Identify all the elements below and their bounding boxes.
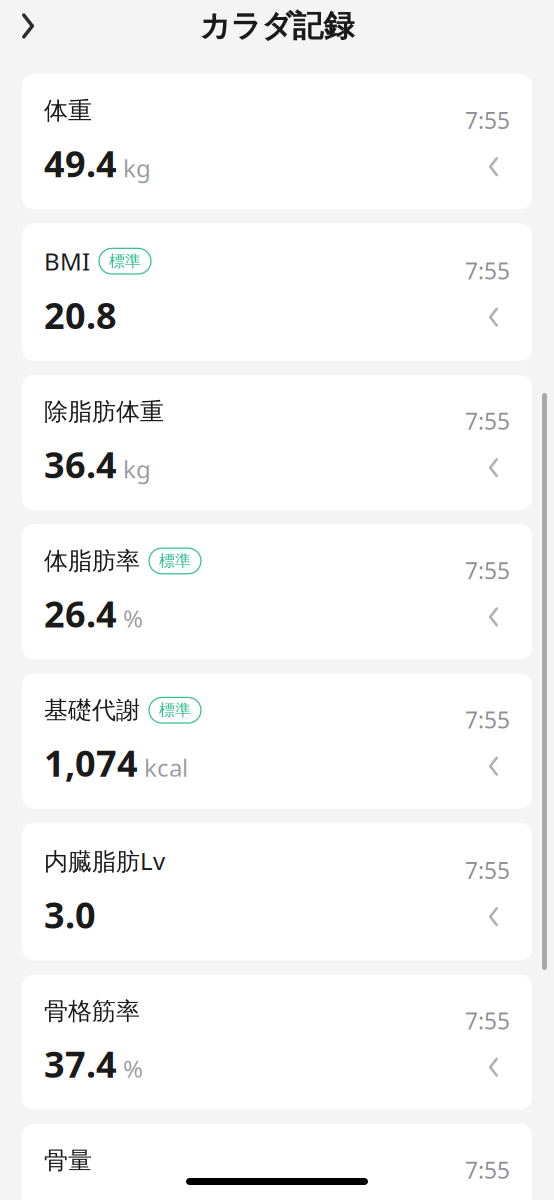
staticText: kcal [144,752,188,783]
staticText: 骨量 [44,1146,92,1175]
button[interactable]: 体重 [22,74,532,209]
staticText: 内臓脂肪Lv [44,845,165,877]
staticText: 7:55 [465,705,510,735]
button[interactable]: 骨格筋率 [22,974,532,1110]
staticText: % [123,1053,143,1084]
button[interactable]: 戻る [4,2,52,50]
button[interactable]: 体脂肪率 [22,524,532,659]
button[interactable]: 内臓脂肪Lv [22,823,532,960]
button[interactable]: 基礎代謝 [22,673,532,809]
staticText: カラダ記録 [199,7,354,45]
button[interactable]: BMI [22,223,532,361]
button[interactable]: 骨量 [22,1124,532,1200]
staticText: 7:55 [465,1006,510,1036]
staticText: 標準 [159,551,191,571]
staticText: 標準 [109,251,141,271]
staticText: 7:55 [465,105,510,135]
staticText: 7:55 [465,255,510,286]
staticText: 除脂肪体重 [44,397,164,426]
staticText: 体脂肪率 [44,546,140,576]
staticText: kg [123,453,151,485]
staticText: 7:55 [465,1155,510,1185]
staticText: BMI [44,245,90,277]
button[interactable]: 除脂肪体重 [22,375,532,510]
staticText: 基礎代謝 [44,695,140,725]
staticText: 7:55 [465,406,510,436]
staticText: 7:55 [465,555,510,585]
staticText: 26.4 [44,590,117,637]
staticText: % [123,602,143,634]
staticText: 標準 [159,700,191,720]
staticText: 骨格筋率 [44,996,140,1026]
staticText: 49.4 [44,139,117,187]
staticText: 37.4 [44,1040,117,1088]
staticText: 1,074 [44,739,138,787]
staticText: 20.8 [44,291,117,339]
staticText: 体重 [44,96,92,125]
staticText: kg [123,152,151,184]
staticText: 36.4 [44,440,117,488]
staticText: 7:55 [465,855,510,885]
staticText: 3.0 [44,891,96,938]
